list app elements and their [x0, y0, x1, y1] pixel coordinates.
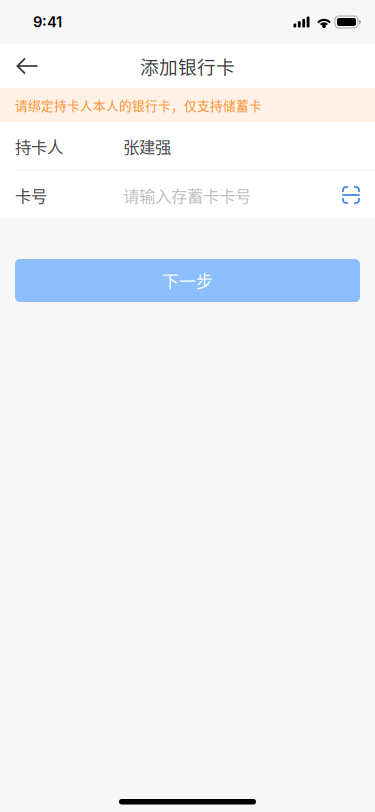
staticText: 张建强 [123, 134, 171, 158]
button[interactable]: 扫描银行卡 [330, 171, 360, 219]
staticText: 9:41 [33, 13, 62, 31]
staticText: 卡号 [15, 183, 47, 207]
staticText: 持卡人 [15, 134, 63, 158]
staticText: 请绑定持卡人本人的银行卡，仅支持储蓄卡 [15, 96, 262, 114]
staticText: 添加银行卡 [140, 52, 235, 79]
staticText: 请输入存蓄卡卡号 [123, 183, 251, 207]
button[interactable]: 返回 [0, 44, 50, 88]
button[interactable]: 下一步 [15, 259, 360, 302]
staticText: 下一步 [162, 268, 213, 292]
